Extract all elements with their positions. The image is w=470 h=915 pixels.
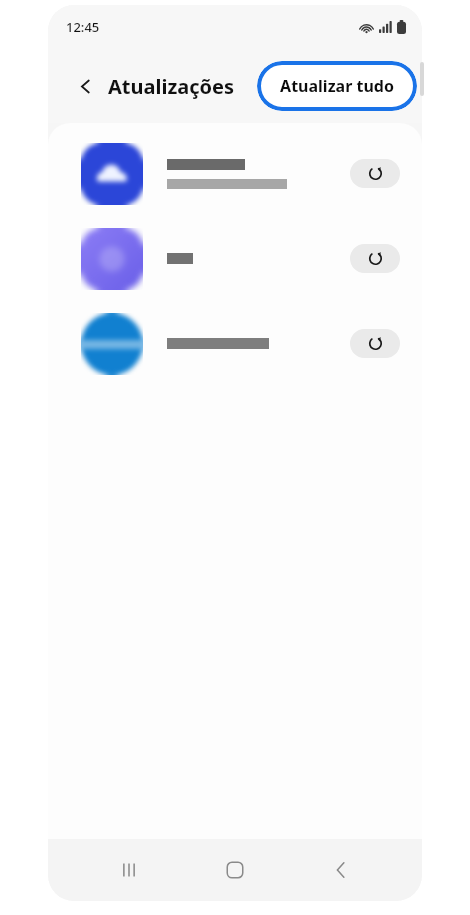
staticText: 12:45 — [66, 18, 100, 36]
button[interactable]: Voltar — [316, 845, 366, 895]
button[interactable]: Atualizar — [48, 216, 422, 301]
button[interactable]: Atualizar — [48, 301, 422, 386]
button[interactable]: Atualizar — [350, 329, 400, 358]
button[interactable]: Voltar — [70, 71, 100, 101]
button[interactable]: Atualizar — [350, 159, 400, 188]
button[interactable]: Atualizar tudo — [257, 61, 417, 111]
button[interactable]: Atualizar — [350, 244, 400, 273]
button[interactable]: Recentes — [104, 845, 154, 895]
staticText: Atualizações — [108, 73, 235, 100]
staticText: Atualizar tudo — [280, 75, 394, 97]
button[interactable]: Início — [210, 845, 260, 895]
button[interactable]: Atualizar — [48, 131, 422, 216]
